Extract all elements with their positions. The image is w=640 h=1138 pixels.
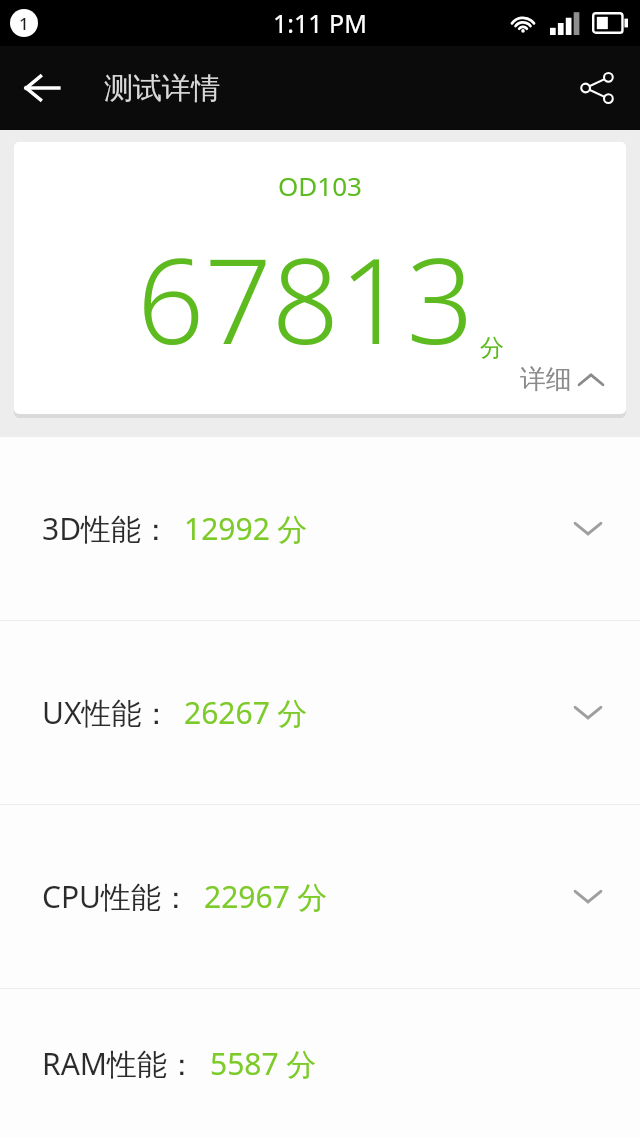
staticText: 分 xyxy=(480,333,504,363)
button[interactable]: UX性能： xyxy=(0,621,640,804)
staticText: UX性能： xyxy=(42,692,172,733)
button[interactable]: 3D性能： xyxy=(0,437,640,620)
staticText: 22967 分 xyxy=(204,876,328,917)
staticText: 详细 xyxy=(520,363,572,396)
button[interactable]: 详细 xyxy=(520,363,604,396)
staticText: 67813 xyxy=(137,218,474,379)
staticText: 26267 分 xyxy=(184,692,308,733)
button[interactable]: RAM性能： xyxy=(0,989,640,1138)
staticText: RAM性能： xyxy=(42,1043,198,1084)
button[interactable]: Share xyxy=(568,59,626,117)
staticText: 测试详情 xyxy=(104,70,220,107)
button[interactable]: OD103 xyxy=(14,142,626,414)
staticText: 12992 分 xyxy=(184,508,308,549)
staticText: 3D性能： xyxy=(42,508,172,549)
staticText: 1:11 PM xyxy=(273,6,367,40)
button[interactable]: Back xyxy=(14,60,70,116)
staticText: CPU性能： xyxy=(42,876,192,917)
staticText: OD103 xyxy=(278,168,362,203)
button[interactable]: CPU性能： xyxy=(0,805,640,988)
staticText: 5587 分 xyxy=(210,1043,317,1084)
staticText: 1 xyxy=(19,12,29,35)
